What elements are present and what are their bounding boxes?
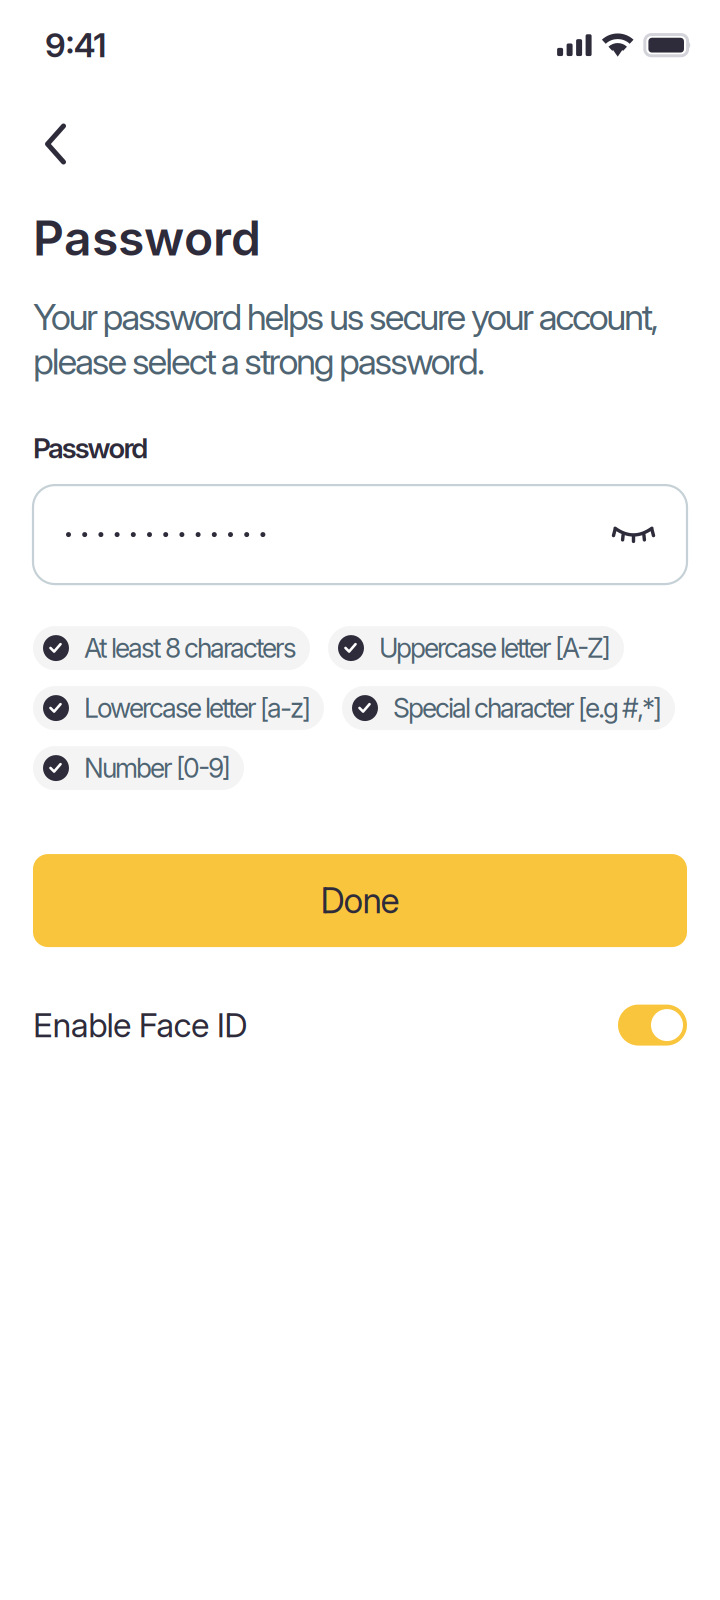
staticText: Lowercase letter [a-z] (84, 692, 311, 724)
staticText: please select a strong password. (33, 340, 486, 383)
staticText: Done (320, 880, 399, 921)
staticText: Uppercase letter [A-Z] (379, 632, 611, 664)
staticText: Number [0-9] (84, 752, 231, 784)
staticText: At least 8 characters (84, 632, 297, 664)
button[interactable]: Show password (602, 503, 666, 567)
staticText: Enable Face ID (33, 1005, 247, 1045)
button[interactable]: Done (33, 854, 687, 947)
staticText: Password (33, 431, 148, 465)
staticText: Password (33, 209, 261, 267)
staticText: 9:41 (45, 25, 106, 65)
staticText: Special character [e.g #,*] (393, 692, 662, 724)
staticText: Your password helps us secure your accou… (33, 295, 659, 339)
button[interactable]: Back (0, 114, 120, 174)
button[interactable]: Enable Face ID (0, 1005, 687, 1045)
